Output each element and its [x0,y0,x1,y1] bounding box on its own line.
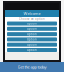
staticText: Option [27,38,37,41]
staticText: Choose an option [19,17,45,21]
staticText: Option [27,27,37,30]
staticText: Option [27,22,37,25]
staticText: Option [27,48,37,52]
staticText: Welcome [23,11,40,16]
staticText: Option [27,43,37,46]
staticText: Option [27,32,37,36]
staticText: Get the app today [17,64,46,70]
